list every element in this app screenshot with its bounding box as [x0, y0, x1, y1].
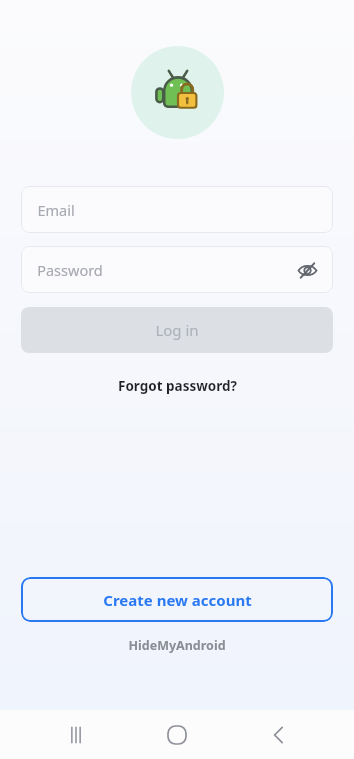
button[interactable]: Forgot password? — [110, 374, 245, 398]
staticText: Email — [37, 200, 75, 220]
button[interactable]: Show password — [289, 252, 325, 288]
button[interactable]: Home — [151, 710, 203, 759]
button[interactable]: Recent apps — [50, 710, 102, 759]
button[interactable]: Log in — [21, 307, 333, 353]
button[interactable]: Back — [253, 710, 305, 759]
button[interactable]: Password — [21, 246, 333, 293]
button[interactable]: Email — [21, 186, 333, 233]
staticText: Create new account — [103, 590, 252, 610]
staticText: HideMyAndroid — [128, 637, 226, 654]
staticText: Forgot password? — [118, 377, 237, 395]
button[interactable]: Create new account — [21, 577, 333, 622]
staticText: Log in — [155, 320, 199, 340]
staticText: Password — [37, 260, 103, 280]
